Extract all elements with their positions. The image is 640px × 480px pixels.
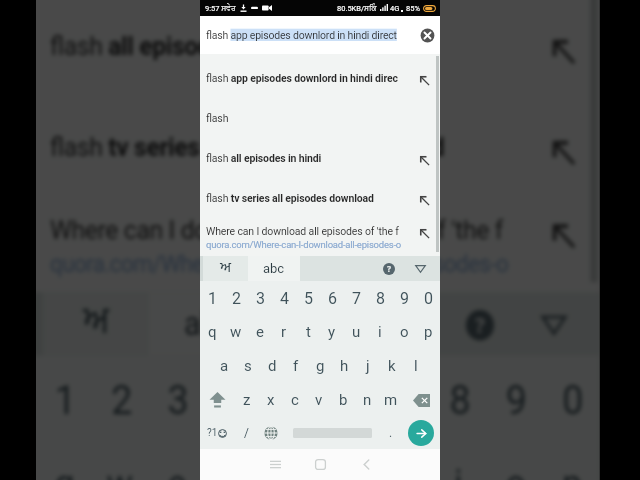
button[interactable]: j — [356, 349, 380, 383]
button[interactable]: o — [487, 441, 543, 480]
button[interactable]: flash app episodes downlord in hindi dir… — [200, 16, 440, 54]
button[interactable]: u — [344, 315, 368, 349]
button[interactable]: v — [307, 383, 331, 417]
button[interactable]: q — [200, 315, 224, 349]
button[interactable]: 5 — [296, 281, 320, 315]
button[interactable]: flash all episodes in hindi — [200, 138, 440, 178]
button[interactable]: Clear query — [419, 27, 435, 43]
button[interactable]: z — [235, 383, 259, 417]
staticText: e — [167, 462, 186, 480]
button[interactable]: flash tv series all episodes download — [200, 178, 440, 218]
button[interactable]: Back — [351, 449, 381, 480]
staticText: 9:57 ਸਵੇਰ — [205, 4, 236, 13]
button[interactable]: 1 — [36, 355, 92, 441]
button[interactable]: e — [149, 441, 205, 480]
button[interactable]: Change language — [258, 417, 284, 449]
button[interactable]: i — [368, 315, 392, 349]
button[interactable]: . — [380, 417, 402, 449]
button[interactable]: Where can I download all episodes of 'th… — [200, 218, 440, 256]
button[interactable]: l — [404, 349, 428, 383]
staticText: o — [400, 323, 409, 341]
button[interactable]: p — [416, 315, 440, 349]
button[interactable]: d — [260, 349, 284, 383]
button[interactable]: ?1 — [200, 417, 234, 449]
button[interactable]: flash all episodes in hindi — [36, 0, 600, 95]
button[interactable]: y — [320, 315, 344, 349]
staticText: ?1 — [207, 427, 218, 439]
button[interactable]: flash — [200, 98, 440, 138]
button[interactable]: u — [374, 441, 431, 480]
button[interactable]: 9 — [487, 355, 543, 441]
button[interactable]: w — [92, 441, 149, 480]
button[interactable]: flash tv series all episodes download — [36, 95, 600, 196]
button[interactable]: 2 — [224, 281, 248, 315]
button[interactable]: a — [212, 349, 236, 383]
button[interactable]: Help — [376, 256, 402, 281]
button[interactable]: x — [259, 383, 283, 417]
button[interactable]: 1 — [200, 281, 224, 315]
button[interactable]: 6 — [318, 355, 374, 441]
button[interactable]: o — [392, 315, 416, 349]
staticText: z — [243, 391, 251, 409]
button[interactable]: 5 — [261, 355, 318, 441]
button[interactable]: f — [284, 349, 308, 383]
button[interactable]: 6 — [320, 281, 344, 315]
button[interactable]: c — [283, 383, 307, 417]
button[interactable]: 8 — [431, 355, 487, 441]
button[interactable]: / — [234, 417, 258, 449]
button[interactable]: 8 — [368, 281, 392, 315]
button[interactable]: b — [331, 383, 355, 417]
button[interactable]: Recent apps — [260, 449, 290, 480]
button[interactable]: 0 — [416, 281, 440, 315]
button[interactable]: ਅ — [43, 292, 149, 355]
button[interactable]: m — [379, 383, 403, 417]
button[interactable]: Space — [284, 417, 380, 449]
button[interactable]: Hide keyboard — [407, 256, 433, 281]
button[interactable]: abc — [248, 256, 300, 281]
button[interactable]: h — [332, 349, 356, 383]
button[interactable]: p — [543, 441, 600, 480]
button[interactable]: 4 — [205, 355, 261, 441]
button[interactable]: t — [296, 315, 320, 349]
button[interactable]: k — [380, 349, 404, 383]
button[interactable]: q — [36, 441, 92, 480]
button[interactable]: 4 — [272, 281, 296, 315]
button[interactable]: Hide keyboard — [522, 292, 583, 355]
button[interactable]: 2 — [92, 355, 149, 441]
staticText: 7 — [393, 376, 414, 424]
button[interactable]: 0 — [543, 355, 600, 441]
button[interactable]: i — [431, 441, 487, 480]
button[interactable]: Where can I download all episodes of 'th… — [36, 196, 600, 292]
button[interactable]: 3 — [248, 281, 272, 315]
button[interactable]: flash app episodes downlord in hindi dir… — [200, 58, 440, 98]
button[interactable]: t — [261, 441, 318, 480]
button[interactable]: 7 — [374, 355, 431, 441]
staticText: j — [366, 357, 370, 375]
staticText: q — [55, 462, 76, 480]
button[interactable]: s — [236, 349, 260, 383]
staticText: t — [306, 323, 311, 341]
button[interactable]: y — [318, 441, 374, 480]
button[interactable]: abc — [149, 292, 271, 355]
button[interactable]: Search — [408, 420, 434, 446]
button[interactable]: ਅ — [203, 256, 248, 281]
button[interactable]: Home — [305, 449, 335, 480]
button[interactable]: r — [272, 315, 296, 349]
staticText: f — [293, 357, 299, 375]
button[interactable]: g — [308, 349, 332, 383]
button[interactable]: e — [248, 315, 272, 349]
button[interactable]: r — [205, 441, 261, 480]
button[interactable]: Help — [449, 292, 510, 355]
staticText: h — [340, 357, 349, 375]
button[interactable]: Backspace — [403, 383, 440, 417]
button[interactable]: 3 — [149, 355, 205, 441]
button[interactable]: n — [355, 383, 379, 417]
button[interactable]: 9 — [392, 281, 416, 315]
staticText: flash tv series all episodes download — [50, 131, 525, 161]
button[interactable]: w — [224, 315, 248, 349]
button[interactable]: 7 — [344, 281, 368, 315]
button[interactable]: Shift — [200, 383, 235, 417]
staticText: p — [424, 323, 433, 341]
